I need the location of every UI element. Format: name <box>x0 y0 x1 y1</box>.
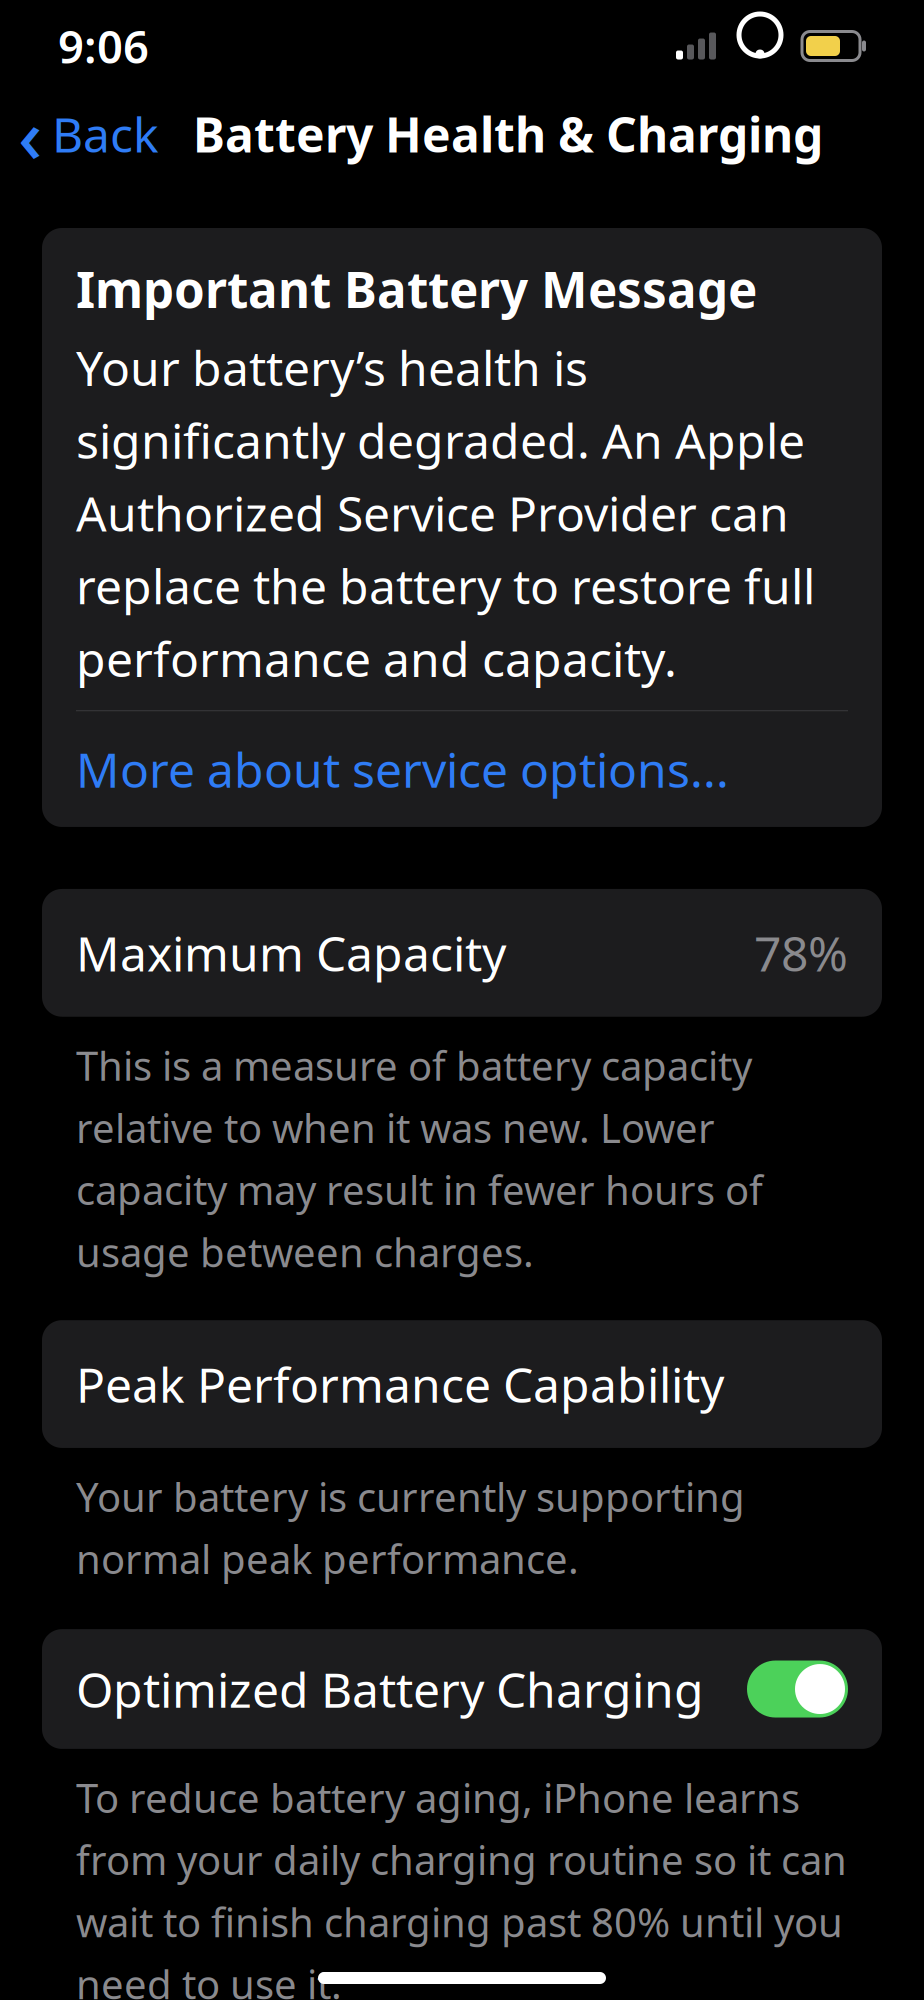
button[interactable]: Maximum Capacity <box>0 889 924 1017</box>
staticText: Optimized Battery Charging <box>76 1657 704 1721</box>
staticText: Back <box>52 102 159 166</box>
staticText: Your battery’s health is significantly d… <box>76 335 815 690</box>
staticText: ‹ <box>18 84 42 184</box>
staticText: Important Battery Message <box>76 256 757 321</box>
staticText: To reduce battery aging, iPhone learns f… <box>76 1771 847 2000</box>
staticText: Battery Health & Charging <box>193 102 823 166</box>
staticText: More about service options... <box>76 737 729 801</box>
button[interactable]: More about service options... <box>76 711 848 827</box>
staticText: This is a measure of battery capacity re… <box>76 1039 763 1278</box>
staticText: 9:06 <box>58 16 149 76</box>
staticText: Maximum Capacity <box>76 921 506 985</box>
button[interactable]: Peak Performance Capability <box>0 1320 924 1448</box>
staticText: Peak Performance Capability <box>76 1352 724 1416</box>
staticText: 78% <box>754 921 848 985</box>
button[interactable]: ‹ <box>0 76 159 192</box>
staticText: Your battery is currently supporting nor… <box>76 1470 745 1585</box>
button[interactable]: Optimized Battery Charging <box>0 1629 924 1749</box>
